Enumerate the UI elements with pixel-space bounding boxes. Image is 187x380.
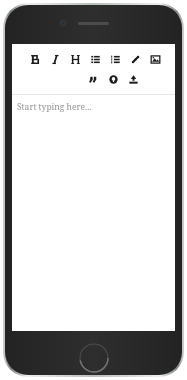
- button[interactable]: Heading: [65, 52, 85, 66]
- button[interactable]: Start typing here...: [12, 95, 175, 331]
- button[interactable]: Bold: [25, 52, 45, 66]
- staticText: Start typing here...: [17, 101, 92, 113]
- button[interactable]: Italic: [45, 52, 65, 66]
- button[interactable]: Block quote: [83, 72, 103, 86]
- button[interactable]: Home: [79, 343, 109, 373]
- button[interactable]: Numbered list: [105, 52, 125, 66]
- button[interactable]: Code: [103, 72, 123, 86]
- button[interactable]: Upload file: [123, 72, 143, 86]
- button[interactable]: Bulleted list: [85, 52, 105, 66]
- button[interactable]: Insert link: [125, 52, 145, 66]
- button[interactable]: Insert image: [145, 52, 165, 66]
